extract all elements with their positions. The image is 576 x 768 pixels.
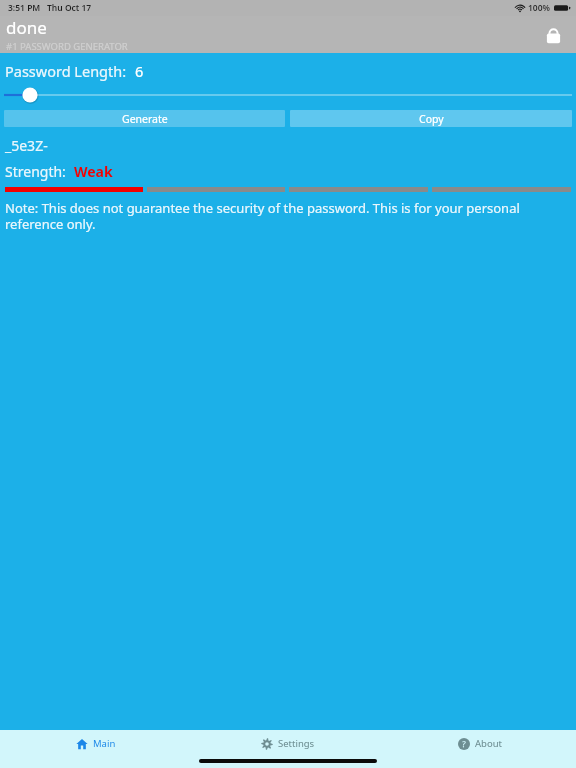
staticText: 6	[135, 61, 144, 81]
staticText: done	[6, 16, 47, 39]
button[interactable]: Copy	[290, 110, 572, 127]
staticText: Settings	[278, 737, 315, 750]
staticText: _5e3Z-	[5, 136, 48, 155]
staticText: Main	[93, 737, 116, 750]
button[interactable]: Settings	[192, 730, 384, 756]
button[interactable]: Generate	[4, 110, 285, 127]
staticText: 3:51 PM	[8, 2, 41, 14]
staticText: #1 PASSWORD GENERATOR	[6, 40, 128, 53]
staticText: Note: This does not guarantee the securi…	[5, 199, 570, 232]
staticText: Weak	[74, 162, 113, 181]
button[interactable]: Lock	[540, 22, 566, 48]
staticText: Generate	[122, 112, 168, 126]
staticText: Copy	[419, 112, 444, 126]
button[interactable]: About	[384, 730, 576, 756]
staticText: Strength:	[5, 162, 66, 181]
button[interactable]: Password length slider	[0, 88, 576, 102]
staticText: 100%	[528, 2, 551, 14]
staticText: Thu Oct 17	[47, 2, 92, 14]
button[interactable]: Main	[0, 730, 192, 756]
staticText: About	[475, 737, 502, 750]
staticText: Password Length:	[5, 61, 127, 81]
